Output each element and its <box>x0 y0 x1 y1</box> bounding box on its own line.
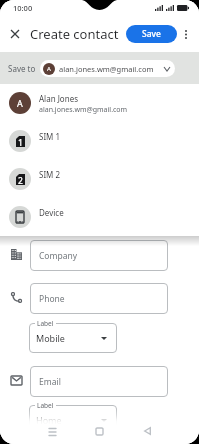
staticText: Mobile <box>36 332 65 344</box>
staticText: A <box>17 97 23 109</box>
staticText: Label <box>37 319 54 328</box>
staticText: A <box>47 65 51 73</box>
button[interactable]: Email <box>30 366 168 397</box>
staticText: alan.jones.wm@gmail.com <box>59 64 162 74</box>
button[interactable]: Save <box>126 25 177 43</box>
button[interactable]: More options <box>177 25 195 43</box>
button[interactable]: 2 <box>0 160 199 198</box>
staticText: Label <box>37 401 54 410</box>
staticText: 2 <box>18 175 23 186</box>
button[interactable]: Close <box>3 22 27 46</box>
button[interactable]: A <box>40 60 175 77</box>
button[interactable]: A <box>0 84 199 122</box>
staticText: 1 <box>18 137 23 148</box>
staticText: Alan Jones <box>39 93 78 104</box>
staticText: Home <box>36 414 62 426</box>
staticText: Save to <box>8 63 36 74</box>
button[interactable]: Device <box>0 198 199 236</box>
staticText: 10:00 <box>13 3 33 13</box>
button[interactable] <box>29 405 117 435</box>
staticText: Company <box>39 250 78 262</box>
button[interactable] <box>29 323 117 353</box>
button[interactable]: Back <box>134 418 160 444</box>
staticText: alan.jones.wm@gmail.com <box>39 105 128 115</box>
staticText: SIM 2 <box>39 169 61 180</box>
button[interactable]: Company <box>30 240 168 271</box>
staticText: Save <box>142 28 161 40</box>
staticText: Email <box>39 376 61 388</box>
staticText: Device <box>39 207 64 218</box>
button[interactable]: 1 <box>0 122 199 160</box>
staticText: Phone <box>39 293 65 305</box>
staticText: SIM 1 <box>39 131 61 142</box>
staticText: Create contact <box>30 25 119 43</box>
button[interactable]: Phone <box>30 283 168 314</box>
button[interactable]: Home <box>86 418 112 444</box>
button[interactable]: Recent apps <box>39 418 65 444</box>
